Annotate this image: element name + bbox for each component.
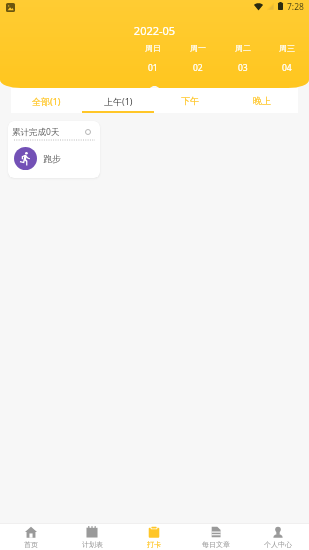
button[interactable]: 周三 bbox=[265, 43, 309, 74]
button[interactable]: 上午(1) bbox=[82, 88, 154, 113]
staticText: 个人中心 bbox=[264, 540, 292, 549]
staticText: 全部(1) bbox=[32, 95, 61, 107]
staticText: 首页 bbox=[24, 540, 38, 549]
button[interactable]: 打卡 bbox=[123, 524, 185, 550]
staticText: 04 bbox=[282, 62, 292, 74]
staticText: 2022-05 bbox=[0, 23, 309, 38]
staticText: 上午(1) bbox=[104, 95, 133, 107]
button[interactable]: 个人中心 bbox=[247, 524, 309, 550]
staticText: 01 bbox=[148, 62, 158, 74]
staticText: 打卡 bbox=[147, 540, 161, 549]
button[interactable]: 首页 bbox=[0, 524, 61, 550]
button[interactable]: 周二 bbox=[220, 43, 265, 74]
button[interactable]: 周一 bbox=[175, 43, 220, 74]
staticText: 跑步 bbox=[43, 153, 61, 164]
button[interactable]: 全部(1) bbox=[11, 88, 82, 113]
button[interactable]: 计划表 bbox=[61, 524, 123, 550]
button[interactable]: 下午 bbox=[154, 88, 226, 113]
staticText: 累计完成0天 bbox=[12, 126, 60, 138]
staticText: 周日 bbox=[145, 43, 161, 53]
staticText: 03 bbox=[238, 62, 248, 74]
button[interactable]: 每日文章 bbox=[185, 524, 247, 550]
staticText: 02 bbox=[193, 62, 203, 74]
button[interactable]: 累计完成0天 bbox=[8, 121, 100, 178]
button[interactable]: 晚上 bbox=[226, 88, 298, 113]
staticText: 晚上 bbox=[253, 95, 271, 106]
staticText: 下午 bbox=[181, 95, 199, 106]
staticText: 计划表 bbox=[82, 540, 103, 549]
button[interactable]: 周日 bbox=[130, 43, 175, 74]
staticText: 7:28 bbox=[287, 1, 304, 13]
staticText: 每日文章 bbox=[202, 540, 230, 549]
staticText: 周三 bbox=[279, 43, 295, 53]
staticText: 周一 bbox=[190, 43, 206, 53]
staticText: 周二 bbox=[235, 43, 251, 53]
